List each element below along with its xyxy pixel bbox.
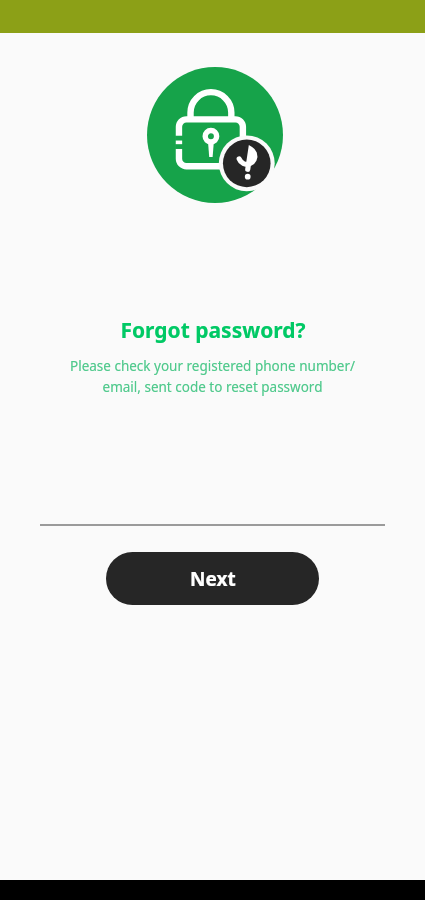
button[interactable] bbox=[40, 484, 385, 526]
staticText: Next bbox=[190, 566, 236, 592]
staticText: Please check your registered phone numbe… bbox=[30, 357, 395, 396]
button[interactable]: Next bbox=[106, 552, 319, 605]
other: Forgot password lock bbox=[147, 67, 283, 203]
staticText: Forgot password? bbox=[120, 316, 306, 345]
